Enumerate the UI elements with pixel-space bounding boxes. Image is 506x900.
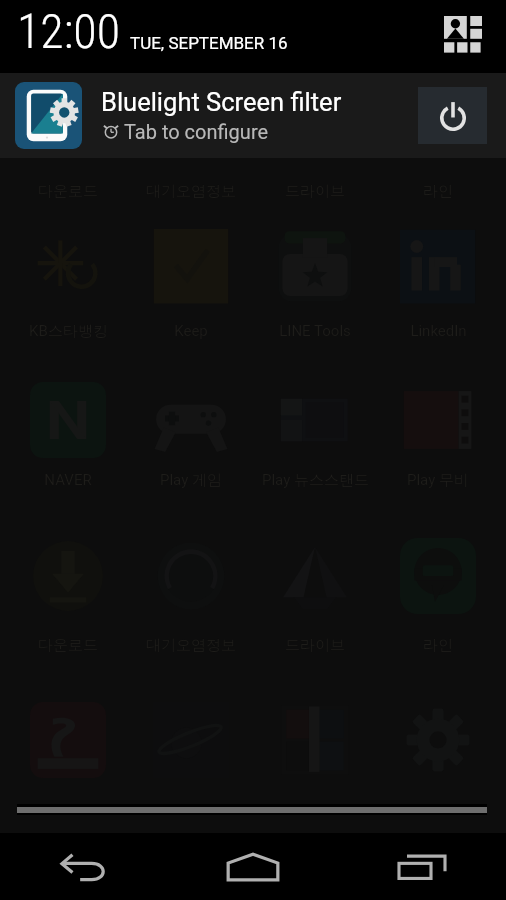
staticText: 다운로드 [38, 182, 98, 201]
staticText: 라인 [423, 636, 453, 655]
button[interactable] [377, 382, 499, 492]
staticText: NAVER [44, 471, 92, 489]
staticText: LINE Tools [279, 322, 351, 340]
button[interactable] [7, 382, 129, 492]
button[interactable] [130, 702, 252, 812]
staticText: 라인 [423, 182, 453, 201]
button[interactable]: Power toggle [418, 87, 487, 144]
staticText: Play 뉴스스탠드 [262, 471, 369, 490]
staticText: Play 게임 [160, 471, 222, 490]
button[interactable]: Home [168, 833, 337, 900]
button[interactable]: Bluelight Screen filter [0, 73, 506, 158]
button[interactable]: Recents [337, 833, 506, 900]
button[interactable]: Quick settings [440, 12, 486, 58]
button[interactable] [377, 229, 499, 339]
button[interactable] [130, 229, 252, 339]
staticText: 다운로드 [38, 636, 98, 655]
button[interactable] [377, 538, 499, 648]
staticText: KB스타뱅킹 [29, 322, 108, 341]
button[interactable] [7, 702, 129, 812]
staticText: TUE, SEPTEMBER 16 [130, 33, 288, 53]
button[interactable] [254, 229, 376, 339]
staticText: 대기오염정보 [146, 636, 236, 655]
button[interactable] [254, 702, 376, 812]
staticText: 12:00 [17, 3, 121, 59]
staticText: 드라이브 [285, 182, 345, 201]
staticText: Tab to configure [124, 120, 269, 143]
staticText: Keep [174, 322, 208, 340]
staticText: Bluelight Screen filter [101, 87, 342, 117]
staticText: Play 무비 [407, 471, 469, 490]
button[interactable]: Back [0, 833, 168, 900]
staticText: 대기오염정보 [146, 182, 236, 201]
staticText: 드라이브 [285, 636, 345, 655]
staticText: LinkedIn [410, 322, 467, 340]
button[interactable] [377, 702, 499, 812]
